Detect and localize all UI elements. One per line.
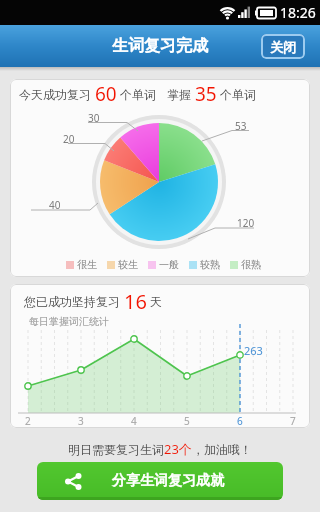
staticText: 2: [25, 414, 31, 428]
staticText: 30: [88, 111, 100, 125]
staticText: 今天成功复习: [19, 86, 95, 102]
staticText: 53: [235, 119, 247, 133]
staticText: 生词复习完成: [112, 36, 208, 56]
button[interactable]: 分享生词复习成就: [37, 462, 283, 500]
staticText: 4: [131, 414, 137, 428]
staticText: 16: [124, 288, 147, 314]
staticText: 40: [49, 198, 61, 212]
staticText: 关闭: [270, 39, 296, 55]
staticText: 天: [147, 293, 163, 309]
staticText: 6: [237, 414, 243, 428]
staticText: 20: [63, 132, 75, 146]
staticText: 263: [244, 343, 263, 358]
staticText: 很熟: [241, 258, 261, 271]
staticText: 每日掌握词汇统计: [29, 315, 109, 328]
staticText: 掌握: [167, 86, 195, 102]
staticText: 23个: [164, 440, 192, 458]
staticText: 35: [195, 81, 217, 107]
staticText: 明日需要复习生词: [68, 442, 164, 457]
staticText: 个单词: [217, 86, 257, 102]
staticText: 您已成功坚持复习: [24, 293, 124, 309]
staticText: 120: [237, 216, 255, 230]
staticText: 7: [290, 414, 296, 428]
staticText: 18:26: [280, 3, 316, 22]
staticText: ，加油哦！: [192, 442, 252, 457]
staticText: 较熟: [200, 258, 220, 271]
staticText: 个单词: [117, 86, 157, 102]
staticText: 一般: [159, 258, 179, 271]
staticText: 60: [95, 81, 117, 107]
staticText: 较生: [118, 258, 138, 271]
staticText: 很生: [77, 258, 97, 271]
button[interactable]: 关闭: [261, 34, 305, 59]
staticText: 3: [78, 414, 84, 428]
staticText: 分享生词复习成就: [112, 472, 224, 490]
staticText: 5: [184, 414, 190, 428]
